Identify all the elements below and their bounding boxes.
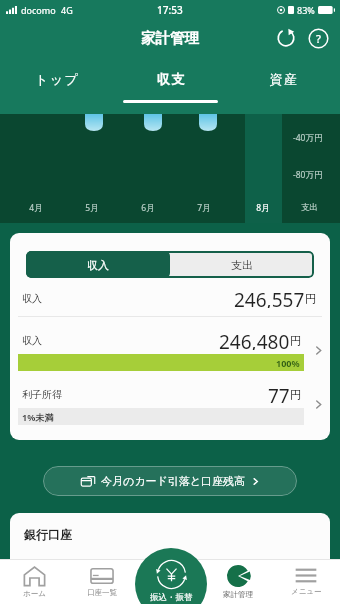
staticText: 収支 xyxy=(156,71,185,87)
staticText: 83% xyxy=(297,4,315,16)
staticText: 100% xyxy=(276,357,300,369)
staticText: 8月 xyxy=(252,202,274,214)
staticText: 利子所得 xyxy=(22,388,62,401)
staticText: 収入 xyxy=(22,292,42,305)
button[interactable]: Refresh xyxy=(272,24,300,52)
staticText: 支出 xyxy=(301,202,318,213)
staticText: 246,557 xyxy=(234,287,305,308)
staticText: 4G xyxy=(61,4,73,16)
staticText: 資産 xyxy=(269,71,298,87)
button[interactable]: メニュー xyxy=(272,559,340,604)
button[interactable]: 家計管理 xyxy=(204,559,272,604)
staticText: 17:53 xyxy=(157,3,183,17)
button[interactable]: トップ xyxy=(0,56,114,104)
button[interactable]: 収支 xyxy=(114,56,227,104)
staticText: 収入 xyxy=(87,258,109,272)
staticText: 1%未満 xyxy=(22,411,54,423)
staticText: 4月 xyxy=(25,202,47,214)
staticText: -40万円 xyxy=(293,132,323,144)
button[interactable]: 支出 xyxy=(170,251,314,278)
staticText: 振込・振替 xyxy=(150,592,193,603)
button[interactable]: 収入 xyxy=(26,251,170,278)
button[interactable]: 資産 xyxy=(227,56,340,104)
staticText: 収入 xyxy=(22,334,42,347)
staticText: 6月 xyxy=(137,202,159,214)
button[interactable]: ホーム xyxy=(0,559,68,604)
staticText: メニュー xyxy=(291,587,322,596)
button[interactable]: 収入 xyxy=(10,329,330,371)
button[interactable]: 今月のカード引落と口座残高 xyxy=(43,466,297,496)
staticText: 円 xyxy=(305,292,317,306)
staticText: 7月 xyxy=(193,202,215,214)
staticText: 家計管理 xyxy=(141,29,199,47)
staticText: 支出 xyxy=(231,258,253,272)
staticText: ? xyxy=(316,31,321,46)
button[interactable]: 振込・振替 xyxy=(135,548,207,604)
staticText: 77 xyxy=(268,383,290,404)
button[interactable]: 利子所得 xyxy=(10,383,330,425)
button[interactable]: Help xyxy=(304,24,332,52)
staticText: 口座一覧 xyxy=(87,588,117,597)
staticText: 円 xyxy=(290,334,302,348)
staticText: トップ xyxy=(35,71,80,87)
button[interactable]: 口座一覧 xyxy=(68,559,136,604)
staticText: 今月のカード引落と口座残高 xyxy=(101,474,246,488)
staticText: 5月 xyxy=(81,202,103,214)
staticText: ホーム xyxy=(23,589,46,598)
staticText: 246,480 xyxy=(219,329,290,350)
staticText: 銀行口座 xyxy=(24,527,72,542)
staticText: -80万円 xyxy=(293,169,323,181)
staticText: 円 xyxy=(290,388,302,402)
staticText: docomo xyxy=(21,4,56,16)
staticText: 家計管理 xyxy=(223,590,253,599)
